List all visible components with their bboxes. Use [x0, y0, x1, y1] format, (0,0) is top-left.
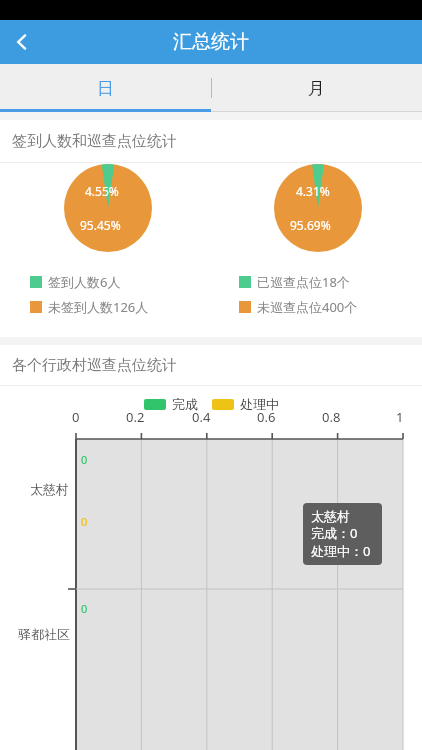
- staticText: 1: [396, 408, 404, 426]
- staticText: 4.55%: [85, 183, 119, 199]
- staticText: 完成: [172, 396, 198, 412]
- staticText: 签到人数和巡查点位统计: [12, 132, 177, 151]
- button[interactable]: 月: [211, 64, 422, 112]
- staticText: 95.45%: [80, 217, 121, 233]
- staticText: 0: [81, 452, 88, 467]
- button[interactable]: 日: [0, 64, 211, 112]
- staticText: 0: [81, 601, 88, 616]
- staticText: 完成：0: [311, 524, 358, 542]
- staticText: 95.69%: [290, 217, 331, 233]
- button[interactable]: Back: [0, 20, 44, 64]
- staticText: 太慈村: [311, 508, 350, 524]
- staticText: 驿都社区: [18, 626, 70, 642]
- button[interactable]: 太慈村: [311, 508, 374, 560]
- staticText: 日: [97, 78, 114, 99]
- staticText: 0.4: [192, 408, 211, 426]
- staticText: 月: [308, 78, 325, 99]
- staticText: 0: [72, 408, 80, 426]
- staticText: 处理中：0: [311, 542, 371, 560]
- staticText: 汇总统计: [173, 30, 249, 54]
- staticText: 已巡查点位18个: [257, 273, 350, 291]
- staticText: 签到人数6人: [48, 273, 121, 291]
- staticText: 0.8: [322, 408, 341, 426]
- staticText: 各个行政村巡查点位统计: [12, 356, 177, 375]
- staticText: 0.2: [126, 408, 145, 426]
- staticText: 太慈村: [30, 481, 69, 497]
- staticText: 0.6: [257, 408, 276, 426]
- staticText: 未签到人数126人: [48, 298, 149, 316]
- staticText: 0: [81, 514, 88, 529]
- staticText: 未巡查点位400个: [257, 298, 358, 316]
- staticText: 处理中: [240, 396, 279, 412]
- staticText: 4.31%: [296, 183, 330, 199]
